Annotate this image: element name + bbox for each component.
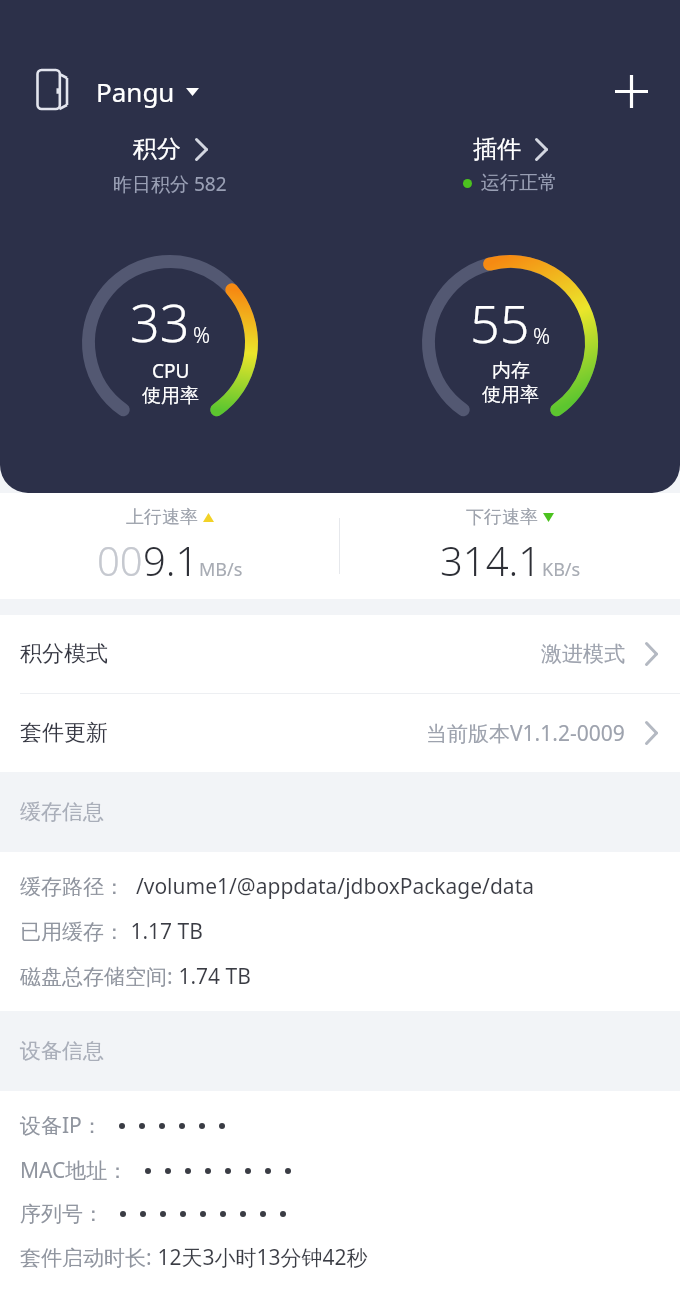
staticText: MAC地址： xyxy=(20,1156,129,1185)
staticText: 当前版本V1.1.2-0009 xyxy=(426,719,625,748)
staticText: 设备信息 xyxy=(20,1038,104,1064)
staticText: 314.1 xyxy=(440,533,542,587)
staticText: 使用率 xyxy=(142,384,199,408)
button[interactable]: Add xyxy=(604,64,658,118)
staticText: 下行速率 xyxy=(466,506,538,529)
staticText: 12天3小时13分钟42秒 xyxy=(152,1243,368,1272)
staticText: % xyxy=(533,322,551,351)
button[interactable]: 套件更新 xyxy=(0,694,680,772)
staticText: 运行正常 xyxy=(481,171,557,195)
staticText: KB/s xyxy=(542,557,581,582)
button[interactable]: Pangu xyxy=(92,66,203,117)
staticText: 缓存路径： xyxy=(20,874,125,900)
staticText: Pangu xyxy=(96,74,175,109)
staticText: 55 xyxy=(470,287,530,358)
staticText: 内存 xyxy=(492,359,530,383)
button[interactable]: 积分模式 xyxy=(0,615,680,693)
staticText: 9.1 xyxy=(143,533,199,587)
staticText: 套件更新 xyxy=(20,719,108,747)
button[interactable]: 插件 xyxy=(340,130,680,199)
staticText: 33 xyxy=(130,286,190,357)
staticText: 上行速率 xyxy=(126,506,198,529)
staticText: CPU xyxy=(152,358,190,384)
staticText: /volume1/@appdata/jdboxPackage/data xyxy=(125,872,534,901)
staticText: 套件启动时长: xyxy=(20,1243,152,1272)
staticText: 1.17 TB xyxy=(125,917,203,946)
staticText: 昨日积分 582 xyxy=(113,171,227,197)
staticText: 已用缓存： xyxy=(20,919,125,945)
staticText: 激进模式 xyxy=(541,641,625,667)
staticText: 00 xyxy=(97,533,143,587)
staticText: 积分 xyxy=(133,134,181,164)
staticText: 设备IP： xyxy=(20,1111,103,1140)
staticText: 积分模式 xyxy=(20,640,108,668)
staticText: 使用率 xyxy=(482,383,539,407)
staticText: MB/s xyxy=(199,557,243,582)
button[interactable]: Device xyxy=(26,65,78,117)
staticText: 缓存信息 xyxy=(20,799,104,825)
button[interactable]: 积分 xyxy=(0,130,340,201)
staticText: % xyxy=(193,321,211,350)
staticText: 1.74 TB xyxy=(173,962,251,991)
staticText: 磁盘总存储空间: xyxy=(20,962,173,991)
staticText: 序列号： xyxy=(20,1201,104,1227)
staticText: 插件 xyxy=(473,134,521,164)
